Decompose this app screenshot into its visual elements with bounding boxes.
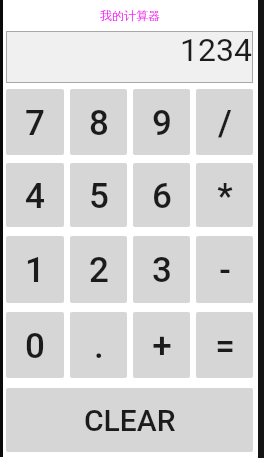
staticText: CLEAR	[84, 403, 176, 438]
button[interactable]: 8	[70, 89, 127, 155]
staticText: +	[152, 326, 172, 367]
staticText: 1	[25, 250, 45, 291]
staticText: 1234	[180, 31, 252, 69]
button[interactable]: 0	[6, 312, 64, 378]
staticText: 0	[25, 326, 45, 367]
button[interactable]: 6	[133, 163, 190, 227]
staticText: 7	[25, 103, 45, 144]
button[interactable]: CLEAR	[6, 388, 253, 452]
button[interactable]: -	[196, 236, 253, 303]
staticText: 5	[89, 176, 109, 217]
staticText: 9	[152, 103, 172, 144]
staticText: .	[94, 326, 104, 367]
button[interactable]: 4	[6, 163, 64, 227]
button[interactable]: 3	[133, 236, 190, 303]
staticText: 2	[89, 250, 109, 291]
staticText: *	[217, 176, 233, 217]
button[interactable]: 5	[70, 163, 127, 227]
button[interactable]: *	[196, 163, 253, 227]
staticText: 8	[89, 103, 109, 144]
staticText: /	[218, 103, 232, 144]
button[interactable]: 2	[70, 236, 127, 303]
button[interactable]: 9	[133, 89, 190, 155]
staticText: 我的计算器	[100, 8, 160, 23]
button[interactable]: 7	[6, 89, 64, 155]
button[interactable]: =	[196, 312, 253, 378]
staticText: 3	[152, 250, 172, 291]
button[interactable]: 1	[6, 236, 64, 303]
staticText: -	[219, 250, 231, 291]
staticText: 4	[25, 176, 45, 217]
button[interactable]: +	[133, 312, 190, 378]
button[interactable]: /	[196, 89, 253, 155]
button[interactable]: .	[70, 312, 127, 378]
staticText: 6	[152, 176, 172, 217]
staticText: =	[215, 326, 235, 367]
